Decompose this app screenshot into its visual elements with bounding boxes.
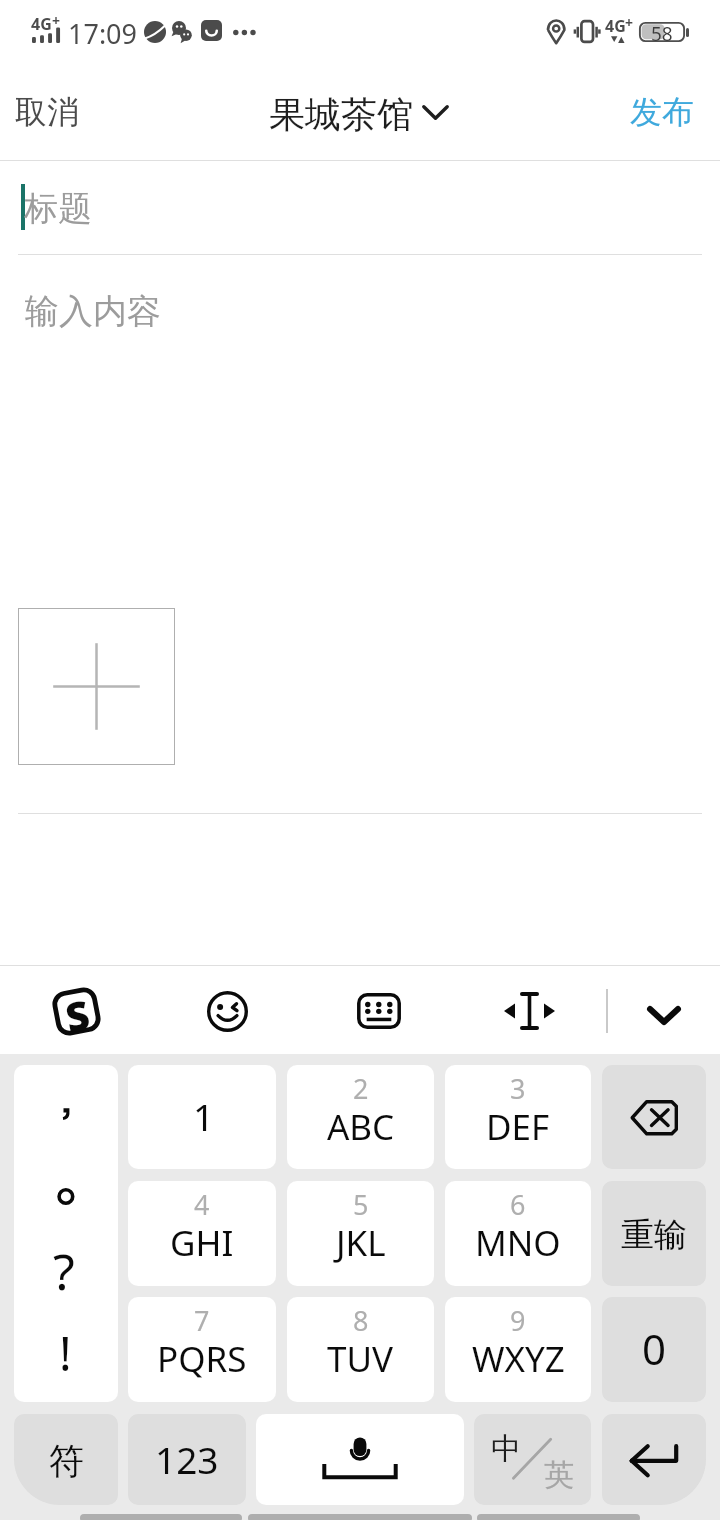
button[interactable]: 符: [14, 1414, 118, 1505]
staticText: 4G: [31, 13, 52, 35]
button[interactable]: 4: [128, 1181, 276, 1286]
staticText: 标题: [24, 187, 92, 230]
button[interactable]: 果城茶馆: [262, 82, 458, 140]
button[interactable]: 123: [128, 1414, 246, 1505]
staticText: +: [52, 11, 61, 30]
button[interactable]: 中: [474, 1414, 591, 1505]
button[interactable]: 2: [287, 1065, 434, 1169]
staticText: TUV: [327, 1335, 394, 1383]
staticText: S: [61, 986, 93, 1035]
staticText: 1: [193, 1091, 215, 1141]
staticText: 4: [194, 1186, 210, 1223]
staticText: 取消: [15, 92, 79, 132]
button[interactable]: 8: [287, 1297, 434, 1402]
staticText: DEF: [486, 1103, 550, 1151]
button[interactable]: 3: [445, 1065, 591, 1169]
staticText: 英: [544, 1456, 574, 1494]
staticText: 符: [49, 1439, 84, 1483]
button[interactable]: Hide keyboard: [624, 972, 704, 1050]
staticText: 2: [353, 1070, 369, 1107]
staticText: JKL: [336, 1219, 386, 1267]
staticText: 58: [651, 21, 673, 41]
staticText: WXYZ: [472, 1335, 565, 1383]
staticText: 输入内容: [25, 290, 161, 333]
staticText: ?: [53, 1237, 75, 1305]
button[interactable]: 6: [445, 1181, 591, 1286]
staticText: 4G: [605, 15, 626, 37]
staticText: 果城茶馆: [269, 92, 413, 137]
button[interactable]: Space / voice input: [256, 1414, 464, 1505]
staticText: ABC: [327, 1103, 395, 1151]
button[interactable]: 9: [445, 1297, 591, 1402]
staticText: 7: [194, 1302, 210, 1339]
button[interactable]: 重输: [602, 1181, 706, 1286]
button[interactable]: 发布: [612, 82, 712, 140]
staticText: 9: [510, 1302, 526, 1339]
staticText: PQRS: [157, 1335, 247, 1383]
staticText: 中: [491, 1430, 521, 1468]
button[interactable]: Move cursor: [489, 972, 569, 1050]
button[interactable]: Add photo: [18, 608, 175, 765]
staticText: 6: [510, 1186, 526, 1223]
button[interactable]: 7: [128, 1297, 276, 1402]
button[interactable]: 0: [602, 1297, 706, 1402]
staticText: 17:09: [68, 15, 138, 52]
button[interactable]: Keyboard layout: [339, 972, 419, 1050]
button[interactable]: 1: [128, 1065, 276, 1169]
button[interactable]: 5: [287, 1181, 434, 1286]
button[interactable]: Emoji: [187, 972, 267, 1050]
staticText: 123: [155, 1434, 219, 1484]
button[interactable]: Backspace: [602, 1065, 706, 1169]
staticText: 3: [510, 1070, 526, 1107]
staticText: 发布: [630, 92, 694, 132]
staticText: 0: [642, 1320, 667, 1377]
button[interactable]: Enter: [602, 1414, 706, 1505]
button[interactable]: 取消: [0, 82, 96, 140]
staticText: !: [59, 1321, 72, 1385]
staticText: 8: [353, 1302, 369, 1339]
staticText: GHI: [170, 1219, 234, 1267]
staticText: 重输: [621, 1214, 687, 1256]
staticText: MNO: [475, 1219, 561, 1267]
button[interactable]: Sogou input method: [36, 972, 116, 1050]
button[interactable]: ?: [14, 1065, 118, 1402]
staticText: +: [625, 13, 634, 32]
staticText: 5: [353, 1186, 369, 1223]
